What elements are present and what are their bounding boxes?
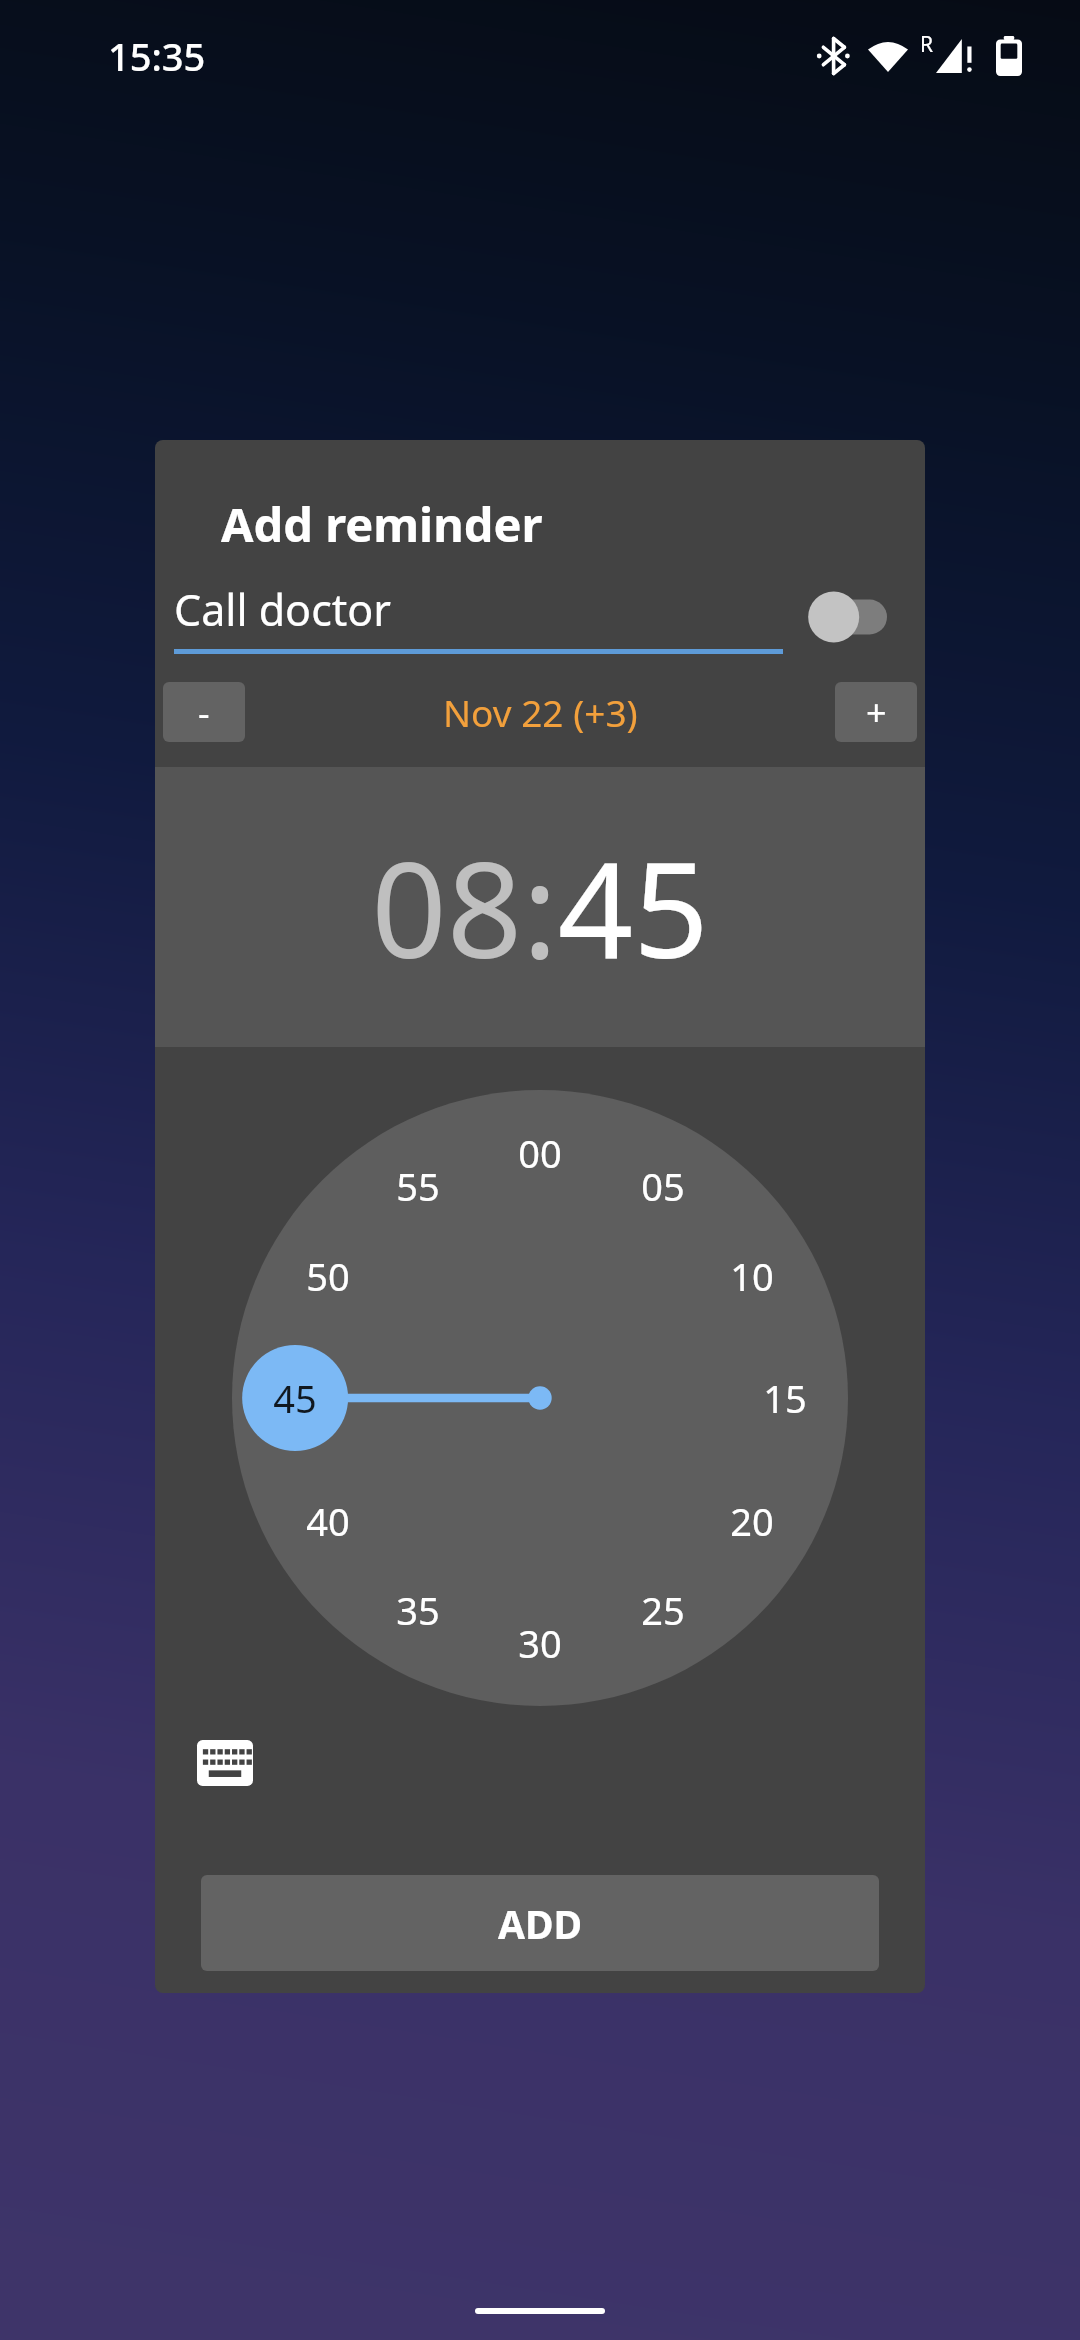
button[interactable]: Call doctor	[174, 580, 783, 654]
staticText: 25	[641, 1584, 685, 1636]
staticText: R	[920, 30, 934, 59]
button[interactable]: 00	[232, 1090, 848, 1706]
button[interactable]: +	[835, 682, 917, 742]
staticText: 00	[518, 1127, 562, 1179]
button[interactable]: Switch to keyboard input	[191, 1729, 259, 1797]
staticText: 35	[396, 1584, 440, 1636]
button[interactable]: Nov 22 (+3)	[443, 687, 638, 737]
staticText: 15	[763, 1372, 807, 1424]
button[interactable]: Reminder enabled toggle	[807, 588, 887, 646]
staticText: +	[866, 688, 887, 737]
staticText: 20	[730, 1495, 774, 1547]
staticText: 10	[730, 1250, 774, 1302]
staticText: 50	[306, 1250, 350, 1302]
staticText: 30	[518, 1617, 562, 1669]
staticText: 15:35	[108, 30, 206, 82]
staticText: -	[198, 688, 210, 737]
button[interactable]: ADD	[201, 1875, 879, 1971]
staticText: ADD	[498, 1897, 583, 1950]
staticText: 08:45	[371, 817, 709, 997]
staticText: Call doctor	[174, 580, 392, 639]
staticText: Add reminder	[221, 492, 543, 556]
button[interactable]: -	[163, 682, 245, 742]
staticText: 55	[396, 1160, 440, 1212]
staticText: 45	[273, 1372, 317, 1424]
staticText: 40	[306, 1495, 350, 1547]
staticText: 05	[641, 1160, 685, 1212]
button[interactable]: 08:45	[155, 767, 925, 1047]
